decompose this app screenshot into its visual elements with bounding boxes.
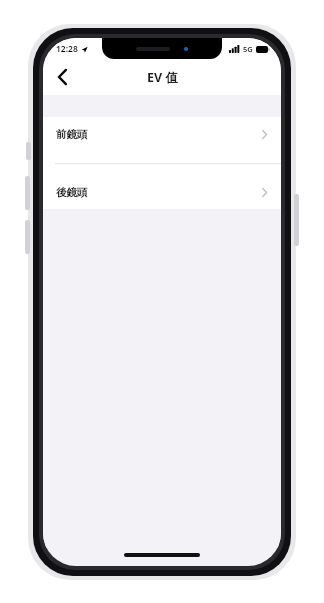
staticText: 後鏡頭 — [56, 186, 88, 199]
button[interactable]: 前鏡頭 — [43, 117, 281, 151]
button[interactable]: Back — [43, 59, 81, 95]
staticText: 5G — [243, 44, 253, 54]
staticText: 前鏡頭 — [56, 128, 88, 141]
staticText: EV 值 — [147, 69, 178, 86]
staticText: 12:28 — [56, 43, 78, 55]
button[interactable]: 後鏡頭 — [43, 175, 281, 209]
